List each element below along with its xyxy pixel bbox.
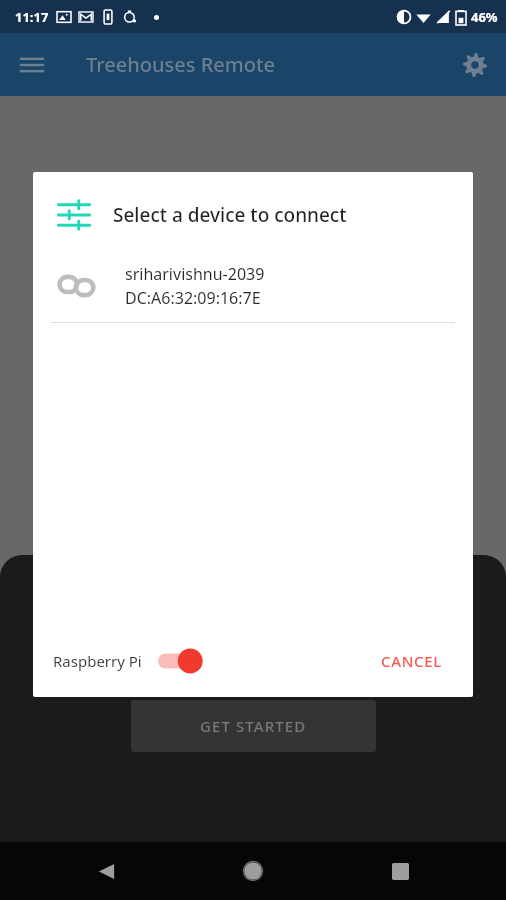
button[interactable]: Settings <box>452 42 498 88</box>
button[interactable]: GET STARTED <box>131 700 376 752</box>
staticText: Select a device to connect <box>113 202 347 228</box>
button[interactable]: Raspberry Pi <box>51 640 206 682</box>
button[interactable]: CANCEL <box>373 641 451 681</box>
staticText: DC:A6:32:09:16:7E <box>125 287 261 309</box>
button[interactable]: sriharivishnu-2039 <box>33 252 473 322</box>
staticText: 11:17 <box>15 8 49 26</box>
staticText: Treehouses Remote <box>86 51 276 78</box>
staticText: CANCEL <box>381 651 443 671</box>
button[interactable]: Back <box>82 847 130 895</box>
staticText: 46% <box>471 8 498 26</box>
staticText: sriharivishnu-2039 <box>125 263 265 285</box>
button[interactable]: Open navigation drawer <box>8 41 56 89</box>
staticText: GET STARTED <box>200 716 307 736</box>
staticText: Raspberry Pi <box>53 651 142 671</box>
button[interactable]: Recent apps <box>376 847 424 895</box>
button[interactable]: Home <box>229 847 277 895</box>
